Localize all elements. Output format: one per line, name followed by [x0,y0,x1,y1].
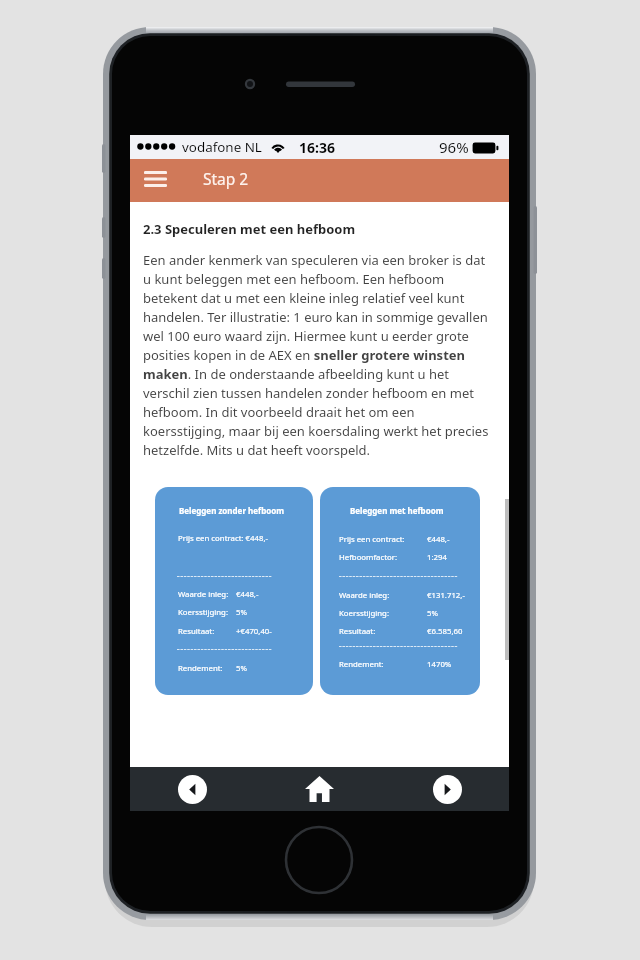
staticText: 1:294 [427,552,447,563]
staticText: 2.3 Speculeren met een hefboom [143,220,356,238]
staticText: Een ander kenmerk van speculeren via een… [143,251,496,459]
staticText: Beleggen met hefboom [350,505,444,516]
staticText: Beleggen zonder hefboom [179,505,284,516]
staticText: +€470,40- [236,626,272,637]
button[interactable]: Next [417,767,477,811]
staticText: Rendement: [339,659,384,670]
staticText: 1470% [427,659,452,670]
button[interactable]: Home [289,767,349,811]
button[interactable]: Beleggen met hefboom [320,487,480,695]
staticText: Koersstijging: [339,608,389,619]
button[interactable]: Beleggen zonder hefboom [155,487,313,695]
staticText: Koersstijging: [178,607,228,618]
staticText: 96% [439,137,469,157]
staticText: 16:36 [299,138,335,157]
staticText: Waarde inleg: [339,590,390,601]
staticText: Rendement: [178,663,223,674]
staticText: 5% [236,607,247,618]
staticText: €448,- [236,589,259,600]
staticText: Stap 2 [203,168,249,189]
staticText: Prijs een contract: [339,534,405,545]
staticText: €448,- [427,534,450,545]
button[interactable]: Previous [162,767,222,811]
staticText: Resultaat: [339,626,376,637]
staticText: Resultaat: [178,626,215,637]
staticText: €131.712,- [427,590,465,601]
staticText: 5% [427,608,438,619]
button[interactable]: Open navigation menu [136,157,174,200]
staticText: Hefboomfactor: [339,552,398,563]
staticText: Prijs een contract: €448,- [178,533,269,544]
staticText: €6.585,60 [427,626,463,637]
staticText: Waarde inleg: [178,589,229,600]
staticText: 5% [236,663,247,674]
staticText: vodafone NL [182,138,262,156]
